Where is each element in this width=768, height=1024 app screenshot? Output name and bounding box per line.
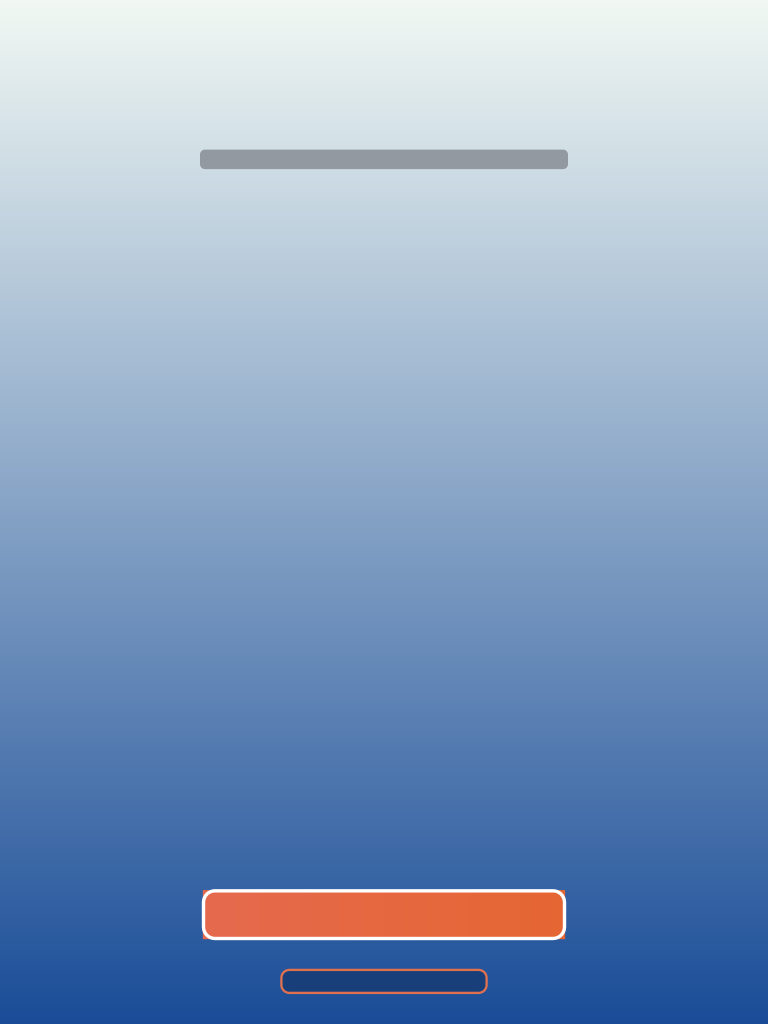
button[interactable]: Learn more: [281, 970, 487, 993]
button[interactable]: Get started: [203, 890, 565, 939]
